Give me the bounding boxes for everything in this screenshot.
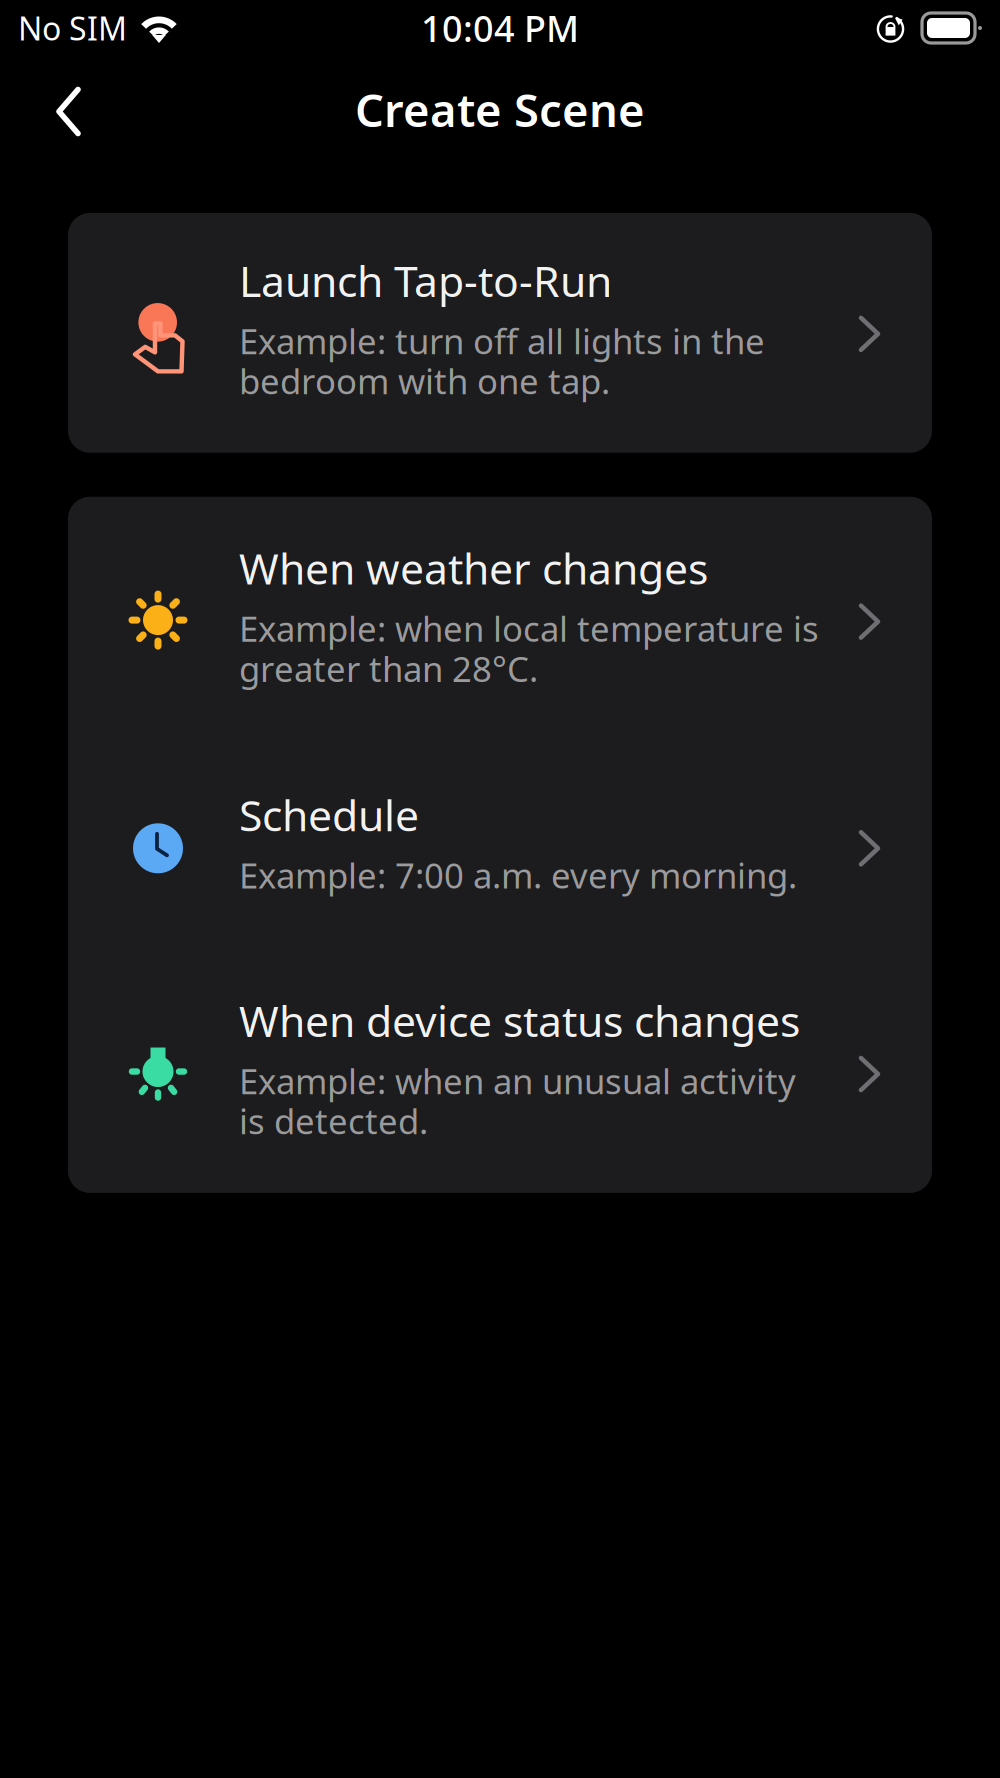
staticText: When weather changes [239, 540, 708, 596]
staticText: Schedule [239, 786, 419, 843]
staticText: No SIM [18, 7, 127, 49]
staticText: Create Scene [355, 79, 645, 140]
button[interactable]: Schedule [68, 739, 932, 946]
staticText: Launch Tap-to-Run [239, 252, 612, 309]
staticText: Example: turn off all lights in the bedr… [239, 318, 765, 404]
staticText: When device status changes [239, 992, 800, 1049]
button[interactable]: Back [0, 56, 113, 157]
staticText: 10:04 PM [421, 4, 579, 52]
button[interactable]: When weather changes [68, 497, 932, 739]
staticText: Example: when local temperature is great… [239, 605, 819, 691]
staticText: Example: when an unusual activity is det… [239, 1058, 796, 1144]
button[interactable]: When device status changes [68, 946, 932, 1193]
button[interactable]: Launch Tap-to-Run [68, 213, 932, 453]
staticText: Example: 7:00 a.m. every morning. [239, 852, 797, 898]
